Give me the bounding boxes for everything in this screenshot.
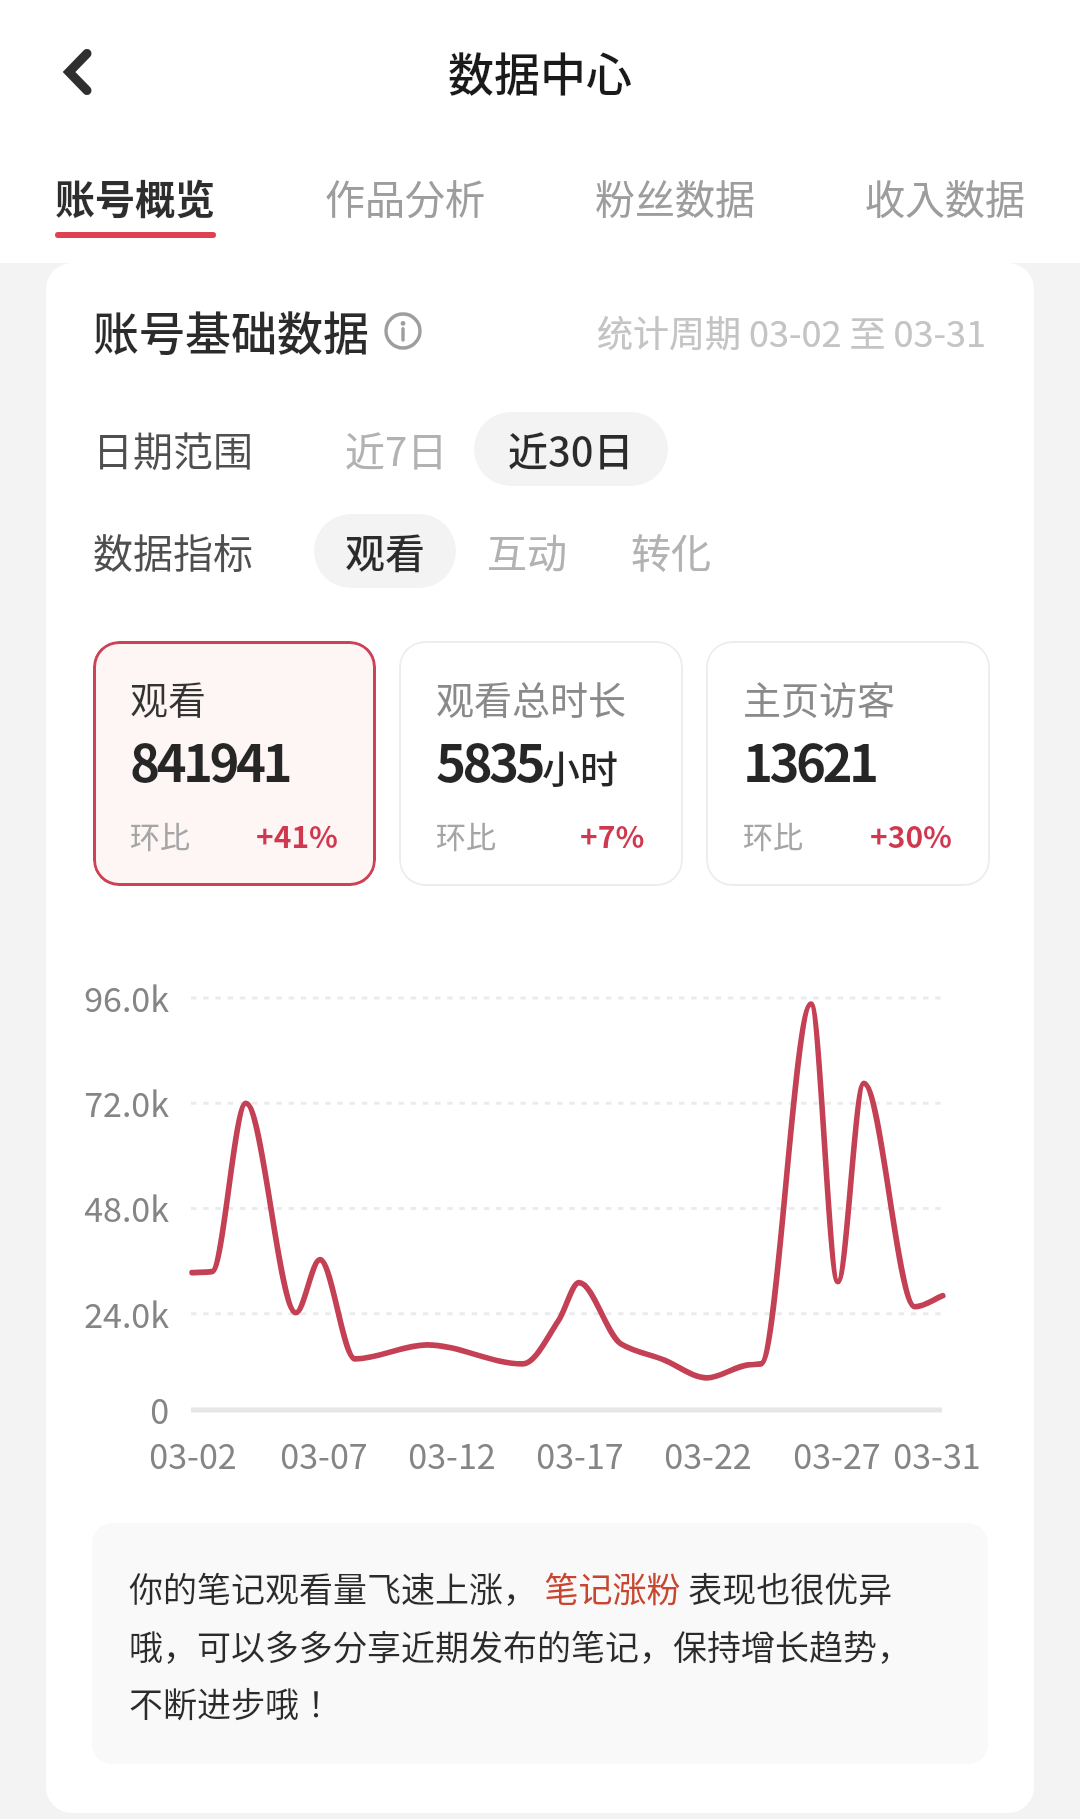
staticText: 72.0k [66,1078,169,1127]
button[interactable]: 作品分析 [270,143,540,263]
button[interactable]: 近7日 [319,412,474,486]
staticText: 观看总时长 [436,670,627,725]
staticText: 24.0k [66,1289,169,1338]
staticText: 作品分析 [325,168,485,226]
staticText: 小时 [542,739,619,794]
button[interactable]: Back [34,28,122,116]
button[interactable]: 转化 [600,514,742,588]
staticText: 03-27 [767,1430,907,1479]
button[interactable]: Info [381,309,425,353]
button[interactable]: 互动 [456,514,598,588]
button[interactable]: 账号概览 [0,143,270,263]
staticText: 03-02 [123,1430,263,1479]
staticText: 粉丝数据 [595,168,755,226]
staticText: 你的笔记观看量飞速上涨， 笔记涨粉 表现也很优异哦，可以多多分享近期发布的笔记，… [129,1563,929,1726]
staticText: 近30日 [508,420,634,478]
staticText: 48.0k [66,1183,169,1232]
staticText: 03-07 [254,1430,394,1479]
button[interactable]: 收入数据 [810,143,1080,263]
staticText: 统计周期 03-02 至 03-31 [597,305,987,357]
staticText: 841941 [130,723,289,797]
staticText: 收入数据 [865,168,1025,226]
staticText: 03-22 [638,1430,778,1479]
staticText: 观看 [345,522,425,580]
staticText: 03-17 [510,1430,650,1479]
staticText: 环比 [743,813,803,856]
staticText: 环比 [436,813,496,856]
staticText: 账号基础数据 [93,297,369,364]
button[interactable]: 观看总时长 [399,641,683,886]
staticText: 互动 [487,522,567,580]
staticText: +30% [870,813,952,856]
staticText: +7% [580,813,645,856]
staticText: 主页访客 [743,670,896,725]
button[interactable]: 观看 [93,641,376,886]
staticText: 日期范围 [93,420,253,478]
staticText: 环比 [130,813,190,856]
staticText: 近7日 [345,420,448,478]
staticText: 5835 [436,723,542,797]
staticText: 96.0k [66,973,169,1022]
staticText: +41% [256,813,338,856]
staticText: 13621 [743,723,876,797]
staticText: 0 [66,1385,169,1434]
staticText: 03-31 [867,1430,1007,1479]
staticText: 数据中心 [448,38,632,105]
button[interactable]: 近30日 [474,412,668,486]
staticText: 数据指标 [93,522,253,580]
staticText: 观看 [130,670,207,725]
button[interactable]: 粉丝数据 [540,143,810,263]
button[interactable]: 主页访客 [706,641,990,886]
staticText: 账号概览 [55,168,215,226]
button[interactable]: 观看 [314,514,456,588]
staticText: 转化 [631,522,711,580]
staticText: 03-12 [382,1430,522,1479]
